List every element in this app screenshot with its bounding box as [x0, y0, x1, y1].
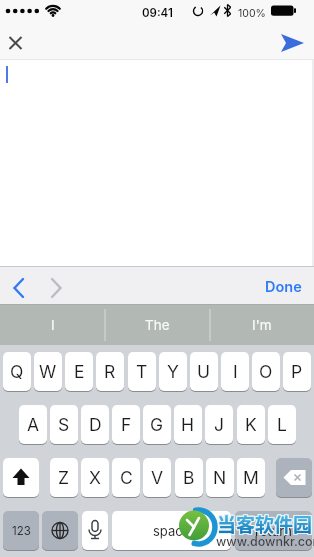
button[interactable]: D	[81, 405, 109, 444]
button[interactable]: X	[81, 458, 109, 497]
staticText: O	[259, 361, 273, 382]
button[interactable]	[0, 60, 314, 266]
staticText: C	[120, 467, 133, 488]
staticText: The	[145, 317, 170, 333]
staticText: 100%	[238, 7, 266, 20]
button[interactable]: K	[237, 405, 265, 444]
button[interactable]: Q	[3, 352, 31, 391]
staticText: 当客软件园	[217, 510, 313, 538]
button[interactable]: The	[105, 305, 210, 345]
staticText: L	[277, 414, 287, 435]
button[interactable]: 123	[3, 511, 39, 550]
button[interactable]: B	[175, 458, 203, 497]
button[interactable]	[8, 275, 30, 301]
staticText: I	[51, 317, 55, 333]
button[interactable]	[276, 458, 312, 497]
button[interactable]: O	[252, 352, 280, 391]
button[interactable]: C	[112, 458, 140, 497]
staticText: 当客软件园	[218, 509, 314, 537]
button[interactable]: I	[221, 352, 249, 391]
button[interactable]: E	[65, 352, 93, 391]
staticText: return	[255, 523, 292, 539]
staticText: 当客软件园	[216, 509, 312, 537]
button[interactable]: Done	[258, 272, 308, 302]
staticText: 当客软件园	[216, 511, 312, 539]
button[interactable]	[45, 275, 67, 301]
button[interactable]: U	[190, 352, 218, 391]
staticText: 当客软件园	[217, 511, 313, 539]
staticText: J	[214, 414, 224, 435]
staticText: Q	[10, 361, 24, 382]
staticText: H	[181, 414, 195, 435]
button[interactable]: G	[143, 405, 171, 444]
button[interactable]	[3, 458, 39, 497]
button[interactable]: L	[268, 405, 296, 444]
staticText: W	[39, 361, 57, 382]
staticText: X	[89, 467, 101, 488]
staticText: S	[58, 414, 70, 435]
button[interactable]: I'm	[209, 305, 314, 345]
button[interactable]: M	[237, 458, 265, 497]
staticText: I'm	[252, 317, 272, 333]
button[interactable]	[276, 30, 308, 56]
staticText: M	[243, 467, 259, 488]
staticText: Z	[58, 467, 70, 488]
staticText: 123	[12, 524, 31, 538]
button[interactable]	[42, 511, 78, 550]
button[interactable]: W	[34, 352, 62, 391]
staticText: N	[213, 467, 227, 488]
staticText: space	[153, 523, 191, 539]
button[interactable]: N	[206, 458, 234, 497]
button[interactable]: J	[205, 405, 233, 444]
staticText: 09:41	[142, 6, 173, 20]
button[interactable]: I	[0, 305, 105, 345]
staticText: D	[89, 414, 102, 435]
staticText: Y	[167, 361, 179, 382]
staticText: 当客软件园	[218, 511, 314, 539]
button[interactable]: A	[19, 405, 47, 444]
staticText: V	[151, 467, 164, 488]
button[interactable]	[82, 511, 108, 550]
button[interactable]	[4, 31, 28, 55]
staticText: F	[121, 414, 132, 435]
staticText: U	[197, 361, 211, 382]
staticText: P	[291, 361, 303, 382]
button[interactable]: H	[174, 405, 202, 444]
button[interactable]: R	[96, 352, 124, 391]
button[interactable]: space	[112, 511, 231, 550]
button[interactable]: T	[128, 352, 156, 391]
staticText: E	[74, 361, 85, 382]
button[interactable]: F	[112, 405, 140, 444]
button[interactable]: S	[50, 405, 78, 444]
staticText: Done	[265, 278, 302, 296]
button[interactable]: Z	[50, 458, 78, 497]
staticText: K	[245, 414, 257, 435]
staticText: 当客软件园	[216, 510, 312, 538]
staticText: 当客软件园	[217, 509, 313, 537]
button[interactable]: P	[283, 352, 311, 391]
staticText: 当客软件园	[218, 510, 314, 538]
staticText: G	[150, 414, 164, 435]
button[interactable]: Y	[159, 352, 187, 391]
staticText: A	[27, 414, 40, 435]
button[interactable]: V	[143, 458, 171, 497]
staticText: I	[233, 361, 238, 382]
staticText: www.downkr.com	[216, 534, 314, 549]
staticText: T	[136, 361, 148, 382]
button[interactable]: return	[235, 511, 312, 550]
staticText: R	[104, 361, 116, 382]
staticText: B	[183, 467, 195, 488]
